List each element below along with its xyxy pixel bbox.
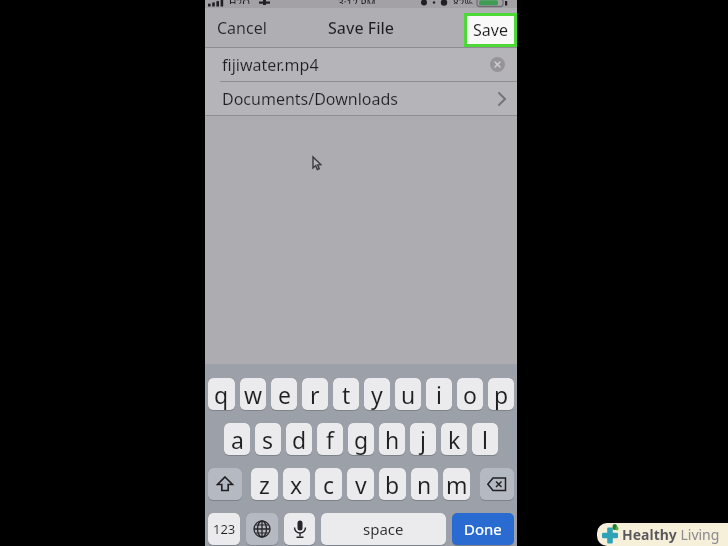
button[interactable]: l: [472, 423, 498, 455]
staticText: space: [363, 519, 404, 539]
button[interactable]: e: [271, 378, 297, 410]
staticText: H2O: [229, 0, 251, 4]
staticText: 3:12 PM: [338, 0, 376, 4]
staticText: y: [371, 379, 383, 410]
staticText: fijiwater.mp4: [222, 54, 319, 76]
staticText: v: [355, 469, 367, 500]
button[interactable]: o: [457, 378, 483, 410]
staticText: 123: [213, 520, 236, 538]
button[interactable]: 123: [208, 513, 240, 545]
staticText: g: [354, 424, 369, 455]
button[interactable]: q: [208, 378, 235, 410]
staticText: r: [310, 379, 320, 410]
staticText: f: [326, 424, 334, 455]
staticText: h: [385, 424, 400, 455]
staticText: o: [463, 379, 477, 410]
staticText: x: [290, 469, 303, 500]
staticText: 82%: [453, 0, 473, 4]
button[interactable]: Healthy Living: [597, 523, 728, 546]
button[interactable]: r: [302, 378, 328, 410]
staticText: n: [417, 469, 432, 500]
button[interactable]: n: [411, 468, 438, 500]
button[interactable]: i: [426, 378, 452, 410]
button[interactable]: j: [410, 423, 436, 455]
button[interactable]: Cancel: [217, 17, 267, 39]
button[interactable]: space: [321, 513, 446, 545]
button[interactable]: [284, 513, 315, 545]
staticText: l: [482, 424, 488, 455]
button[interactable]: g: [348, 423, 374, 455]
button[interactable]: x: [283, 468, 310, 500]
staticText: b: [385, 469, 400, 500]
button[interactable]: Save: [467, 16, 514, 44]
button[interactable]: h: [379, 423, 405, 455]
button[interactable]: fijiwater.mp4: [205, 48, 517, 81]
button[interactable]: [246, 513, 278, 545]
staticText: s: [262, 424, 274, 455]
button[interactable]: m: [443, 468, 470, 500]
button[interactable]: [480, 468, 514, 500]
button[interactable]: c: [315, 468, 342, 500]
staticText: i: [436, 379, 442, 410]
button[interactable]: [208, 468, 242, 500]
staticText: p: [494, 379, 509, 410]
button[interactable]: u: [395, 378, 421, 410]
button[interactable]: f: [317, 423, 343, 455]
button[interactable]: y: [364, 378, 390, 410]
staticText: c: [323, 469, 335, 500]
staticText: w: [244, 379, 263, 410]
staticText: Save: [473, 19, 508, 41]
button[interactable]: d: [286, 423, 312, 455]
staticText: d: [292, 424, 307, 455]
button[interactable]: p: [488, 378, 514, 410]
staticText: j: [420, 424, 426, 455]
button[interactable]: v: [347, 468, 374, 500]
staticText: t: [342, 379, 351, 410]
button[interactable]: k: [441, 423, 467, 455]
button[interactable]: b: [379, 468, 406, 500]
staticText: u: [401, 379, 416, 410]
staticText: e: [278, 379, 291, 410]
button[interactable]: Documents/Downloads: [205, 82, 517, 115]
staticText: Cancel: [217, 17, 267, 39]
staticText: a: [231, 424, 244, 455]
staticText: Done: [464, 519, 502, 539]
button[interactable]: s: [255, 423, 281, 455]
staticText: Save File: [328, 17, 395, 39]
staticText: q: [214, 379, 229, 410]
staticText: Documents/Downloads: [222, 88, 398, 110]
staticText: m: [446, 469, 468, 500]
button[interactable]: a: [224, 423, 250, 455]
staticText: k: [448, 424, 461, 455]
staticText: z: [259, 469, 270, 500]
button[interactable]: z: [251, 468, 278, 500]
button[interactable]: w: [240, 378, 266, 410]
button[interactable]: Done: [452, 513, 514, 545]
button[interactable]: t: [333, 378, 359, 410]
staticText: Healthy Living: [622, 525, 720, 544]
